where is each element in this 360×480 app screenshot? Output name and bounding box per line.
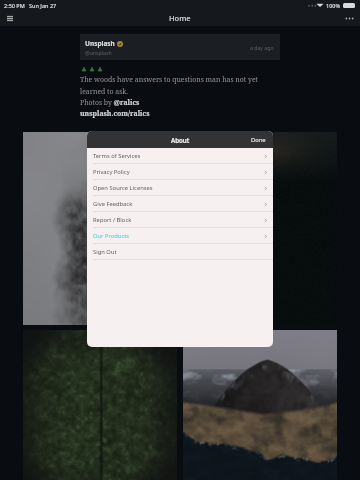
staticText: a day ago — [250, 44, 274, 51]
staticText: Unsplash — [85, 39, 115, 48]
button[interactable] — [23, 132, 177, 325]
staticText: Sun Jan 27 — [29, 2, 57, 9]
button[interactable]: Open Source Licenses — [87, 180, 273, 196]
button[interactable]: Privacy Policy — [87, 164, 273, 180]
staticText: Sign Out — [93, 248, 117, 256]
staticText: 100% — [326, 2, 341, 9]
staticText: Give Feedback — [93, 200, 133, 208]
staticText: Open Source Licenses — [93, 184, 153, 192]
button[interactable]: Unsplash — [80, 34, 280, 60]
staticText: Home — [169, 13, 191, 23]
staticText: About — [171, 136, 190, 144]
staticText: Privacy Policy — [93, 168, 130, 176]
button[interactable]: Our Products — [87, 228, 273, 244]
button[interactable]: Open navigation menu — [0, 11, 20, 26]
button[interactable] — [183, 330, 337, 480]
staticText: Terms of Services — [93, 152, 141, 160]
staticText: Report / Block — [93, 216, 132, 224]
staticText: Our Products — [93, 232, 130, 240]
staticText: The woods have answers to questions man … — [80, 75, 258, 118]
button[interactable] — [183, 132, 337, 325]
button[interactable]: More options — [339, 11, 360, 26]
button[interactable]: Report / Block — [87, 212, 273, 228]
button[interactable]: Sign Out — [87, 244, 273, 260]
button[interactable] — [23, 330, 177, 480]
staticText: @unsplash — [85, 49, 112, 56]
staticText: 2:50 PM — [4, 2, 25, 9]
staticText: Done — [251, 136, 266, 144]
button[interactable]: Give Feedback — [87, 196, 273, 212]
button[interactable]: Done — [244, 133, 273, 147]
button[interactable]: Terms of Services — [87, 148, 273, 164]
